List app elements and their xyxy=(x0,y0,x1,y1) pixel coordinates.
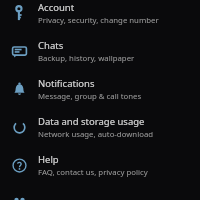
staticText: FAQ, contact us, privacy policy xyxy=(38,167,148,178)
other: Data and storage usage xyxy=(0,120,38,135)
other: Chats settings xyxy=(0,44,38,59)
staticText: Help xyxy=(38,153,59,166)
other: Notification settings xyxy=(0,82,38,97)
button[interactable]: Notification settings xyxy=(0,76,200,102)
button[interactable]: Chats settings xyxy=(0,38,200,64)
button[interactable]: Data and storage usage xyxy=(0,114,200,140)
other: Help xyxy=(0,158,38,173)
staticText: Account xyxy=(38,1,75,14)
staticText: Network usage, auto-download xyxy=(38,129,154,140)
staticText: Data and storage usage xyxy=(38,115,145,128)
staticText: Privacy, security, change number xyxy=(38,15,159,26)
staticText: Backup, history, wallpaper xyxy=(38,53,135,64)
staticText: Chats xyxy=(38,39,64,52)
other: Account settings xyxy=(0,6,38,21)
staticText: Notifications xyxy=(38,77,95,90)
button[interactable]: Account settings xyxy=(0,0,200,26)
staticText: Message, group & call tones xyxy=(38,91,142,102)
button[interactable]: Help xyxy=(0,152,200,178)
